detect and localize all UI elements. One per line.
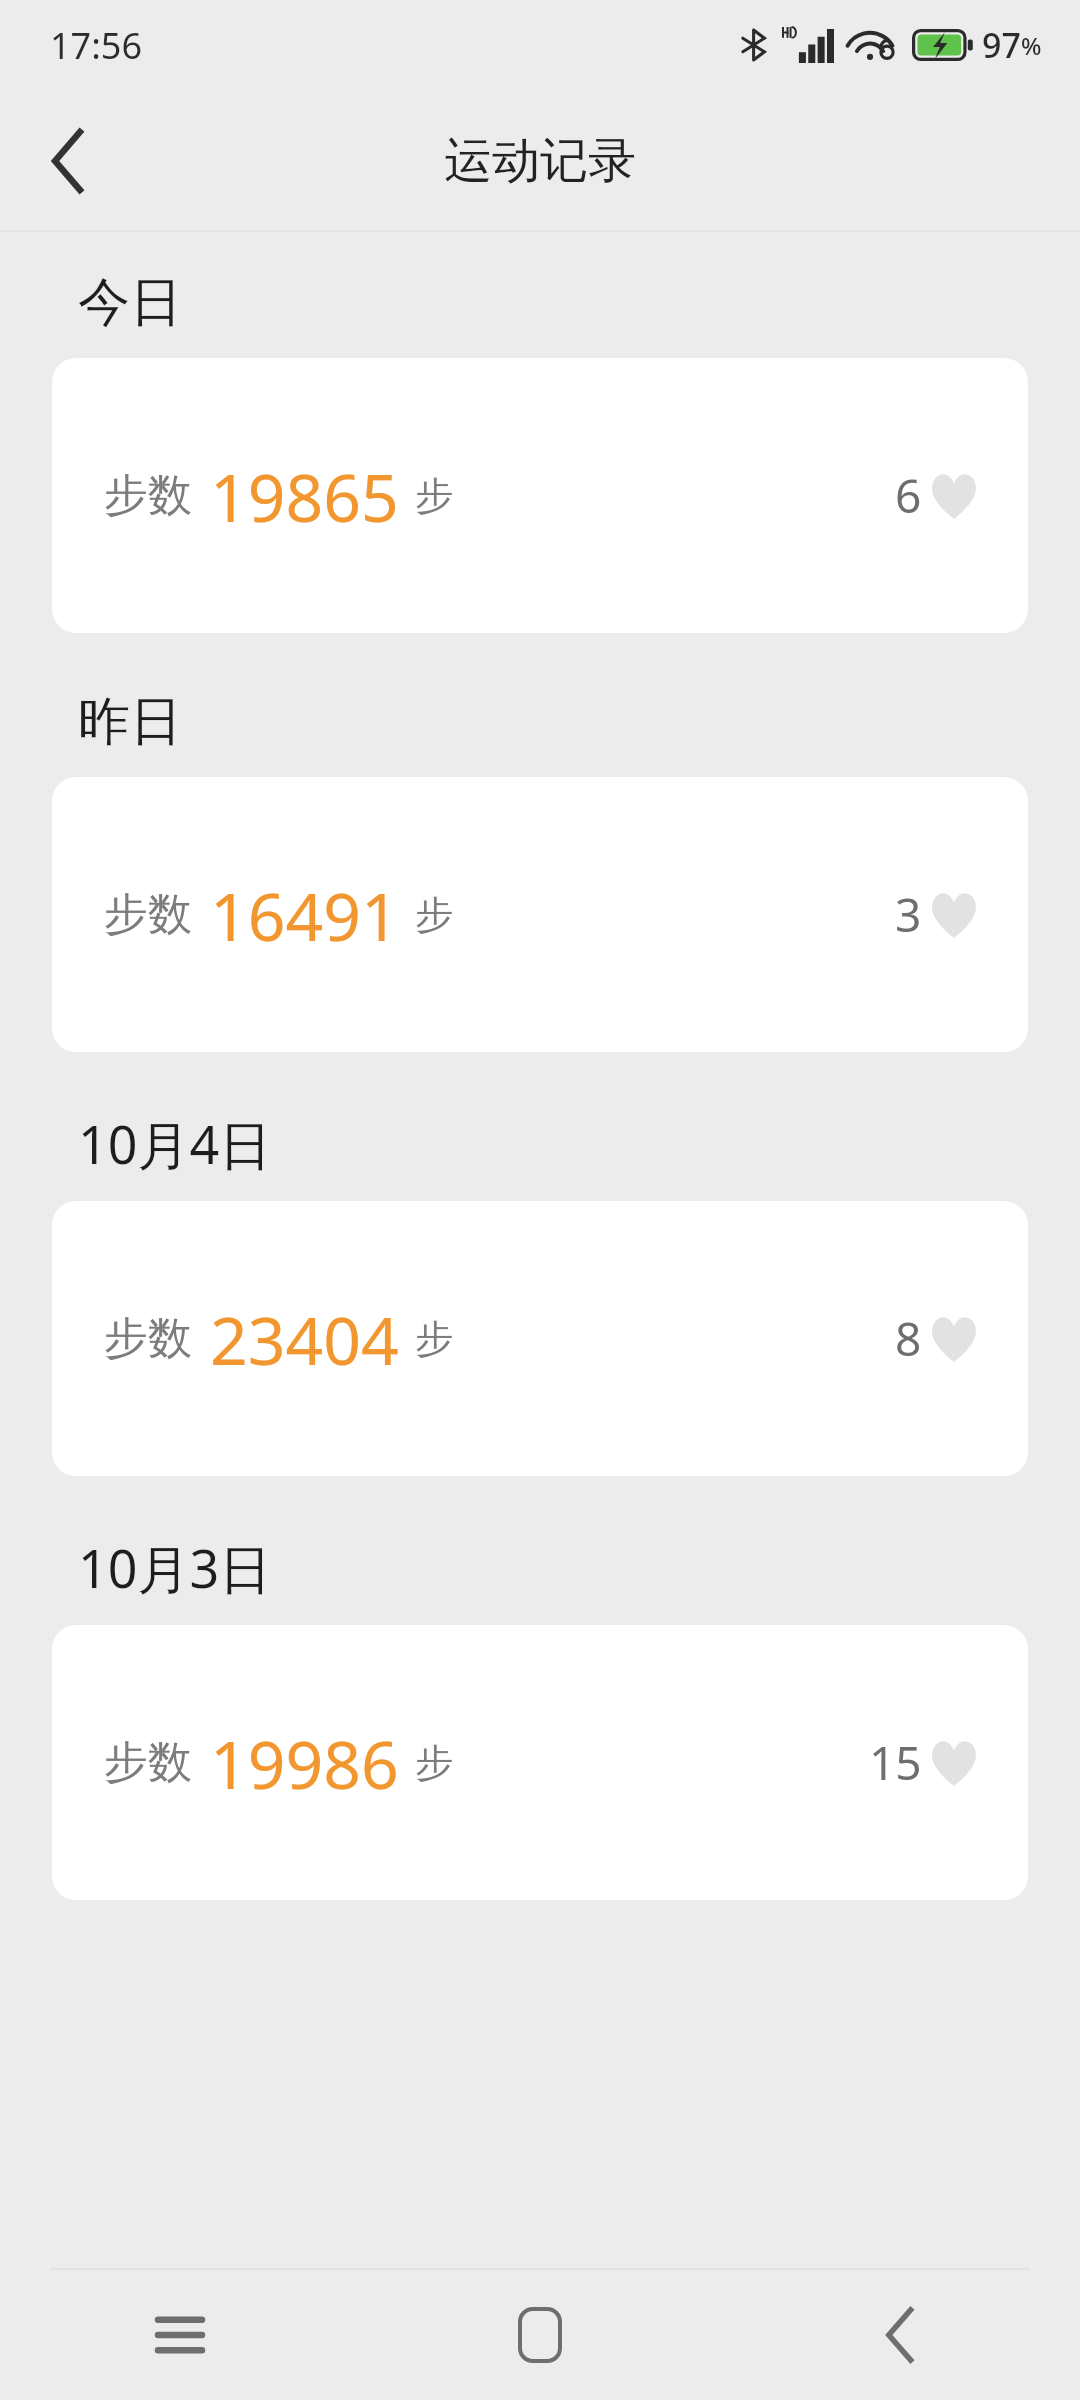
button[interactable]: 步数 bbox=[52, 1201, 1028, 1476]
staticText: 8 bbox=[895, 1307, 922, 1370]
staticText: 3 bbox=[895, 883, 922, 946]
staticText: 6 bbox=[895, 464, 922, 527]
staticText: 15 bbox=[869, 1731, 922, 1794]
button[interactable]: Home bbox=[360, 2270, 720, 2400]
staticText: 10月3日 bbox=[78, 1532, 272, 1603]
staticText: 23404 bbox=[210, 1294, 399, 1384]
staticText: 昨日 bbox=[78, 689, 182, 755]
staticText: 19986 bbox=[210, 1718, 399, 1808]
staticText: 今日 bbox=[78, 270, 182, 336]
staticText: 17:56 bbox=[50, 21, 143, 70]
button[interactable]: Back bbox=[18, 111, 118, 211]
staticText: 步数 bbox=[104, 887, 192, 942]
staticText: 运动记录 bbox=[444, 131, 636, 191]
button[interactable]: 步数 bbox=[52, 777, 1028, 1052]
button[interactable]: 步数 bbox=[52, 1625, 1028, 1900]
staticText: 步 bbox=[415, 1739, 453, 1787]
staticText: 步 bbox=[415, 472, 453, 520]
staticText: 97 bbox=[982, 22, 1021, 68]
staticText: 步数 bbox=[104, 468, 192, 523]
staticText: 步 bbox=[415, 1315, 453, 1363]
staticText: 步 bbox=[415, 891, 453, 939]
button[interactable]: 步数 bbox=[52, 358, 1028, 633]
button[interactable]: Back bbox=[720, 2270, 1080, 2400]
button[interactable]: Recent apps bbox=[0, 2270, 360, 2400]
staticText: 10月4日 bbox=[78, 1108, 272, 1179]
staticText: 16491 bbox=[210, 870, 399, 960]
staticText: 19865 bbox=[210, 451, 399, 541]
staticText: 步数 bbox=[104, 1735, 192, 1790]
staticText: % bbox=[1021, 29, 1042, 62]
staticText: 步数 bbox=[104, 1311, 192, 1366]
